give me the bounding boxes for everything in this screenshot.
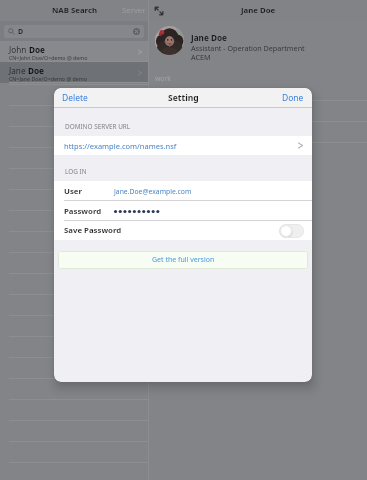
staticText: Doe — [29, 44, 45, 55]
staticText: User — [64, 186, 82, 197]
staticText: Done — [282, 92, 304, 104]
staticText: Server — [122, 5, 146, 16]
button[interactable]: D — [4, 25, 144, 38]
button[interactable]: Delete — [62, 92, 88, 104]
staticText: Setting — [168, 92, 199, 104]
button[interactable]: Save Password — [54, 221, 312, 240]
button[interactable]: User — [54, 181, 312, 201]
staticText: Jane — [9, 65, 28, 76]
staticText: John — [9, 44, 29, 55]
staticText: Get the full version — [152, 255, 215, 265]
button[interactable]: John — [0, 41, 148, 62]
button[interactable]: Expand — [152, 4, 166, 18]
staticText: Save Password — [64, 225, 122, 236]
staticText: Jane Doe — [191, 32, 227, 43]
button[interactable]: Done — [282, 92, 304, 104]
staticText: https://example.com/names.nsf — [64, 141, 177, 151]
button[interactable]: Password — [54, 201, 312, 221]
staticText: CN=Jane Doe/O=demo @ demo — [9, 75, 87, 82]
staticText: NAB Search — [52, 5, 97, 16]
staticText: LOG IN — [65, 167, 87, 176]
staticText: Doe — [28, 65, 44, 76]
staticText: Delete — [62, 92, 88, 104]
button[interactable]: Get the full version — [58, 251, 308, 269]
staticText: Assistant - Operation Department — [191, 43, 305, 53]
staticText: D — [18, 27, 24, 37]
staticText: Jane.Doe@example.com — [114, 187, 192, 196]
staticText: work — [155, 74, 171, 83]
staticText: Jane Doe — [241, 5, 276, 16]
button[interactable]: https://example.com/names.nsf — [54, 136, 312, 155]
staticText: CN=John Doe/O=demo @ demo — [9, 54, 88, 61]
staticText: ACEM — [191, 52, 211, 62]
button[interactable]: Jane — [0, 62, 148, 83]
staticText: DOMINO SERVER URL — [65, 122, 131, 131]
button[interactable]: Server — [122, 5, 146, 16]
staticText: Password — [64, 206, 102, 217]
